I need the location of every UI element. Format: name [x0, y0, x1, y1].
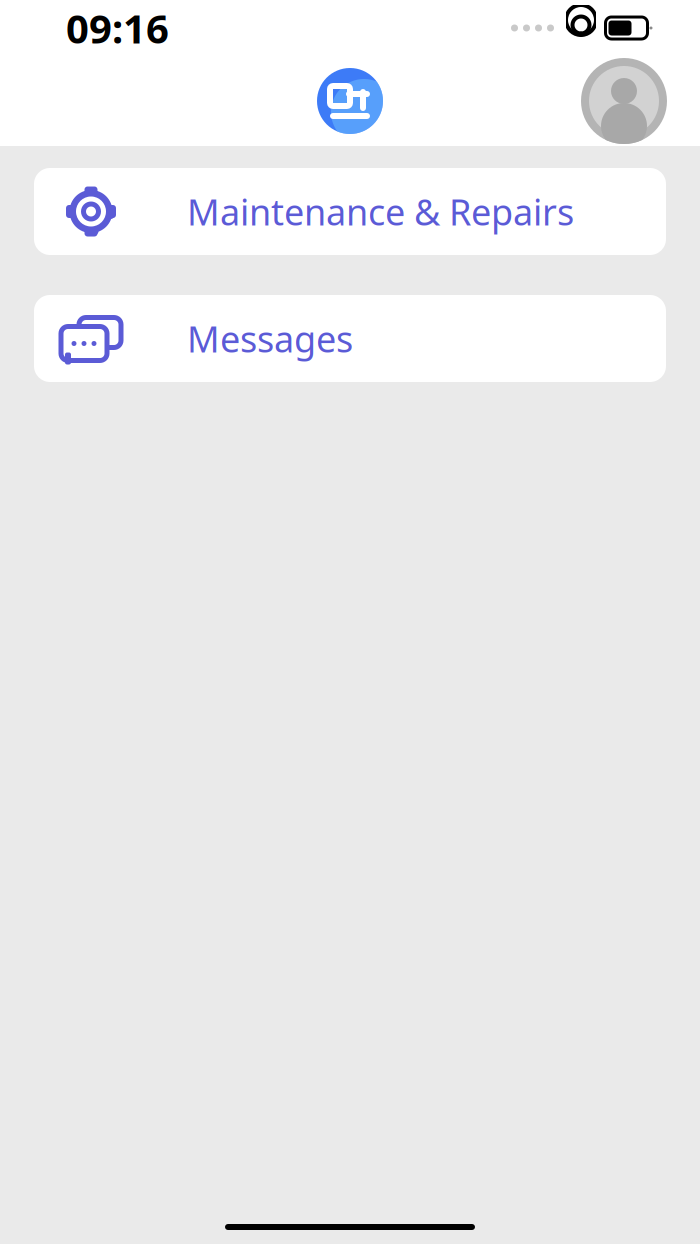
staticText: 09:16 [66, 1, 169, 54]
button[interactable]: Messages [34, 295, 666, 382]
button[interactable]: Maintenance & Repairs [34, 168, 666, 255]
staticText: Maintenance & Repairs [187, 188, 574, 235]
button[interactable]: Profile [576, 58, 672, 144]
staticText: Messages [187, 315, 353, 362]
